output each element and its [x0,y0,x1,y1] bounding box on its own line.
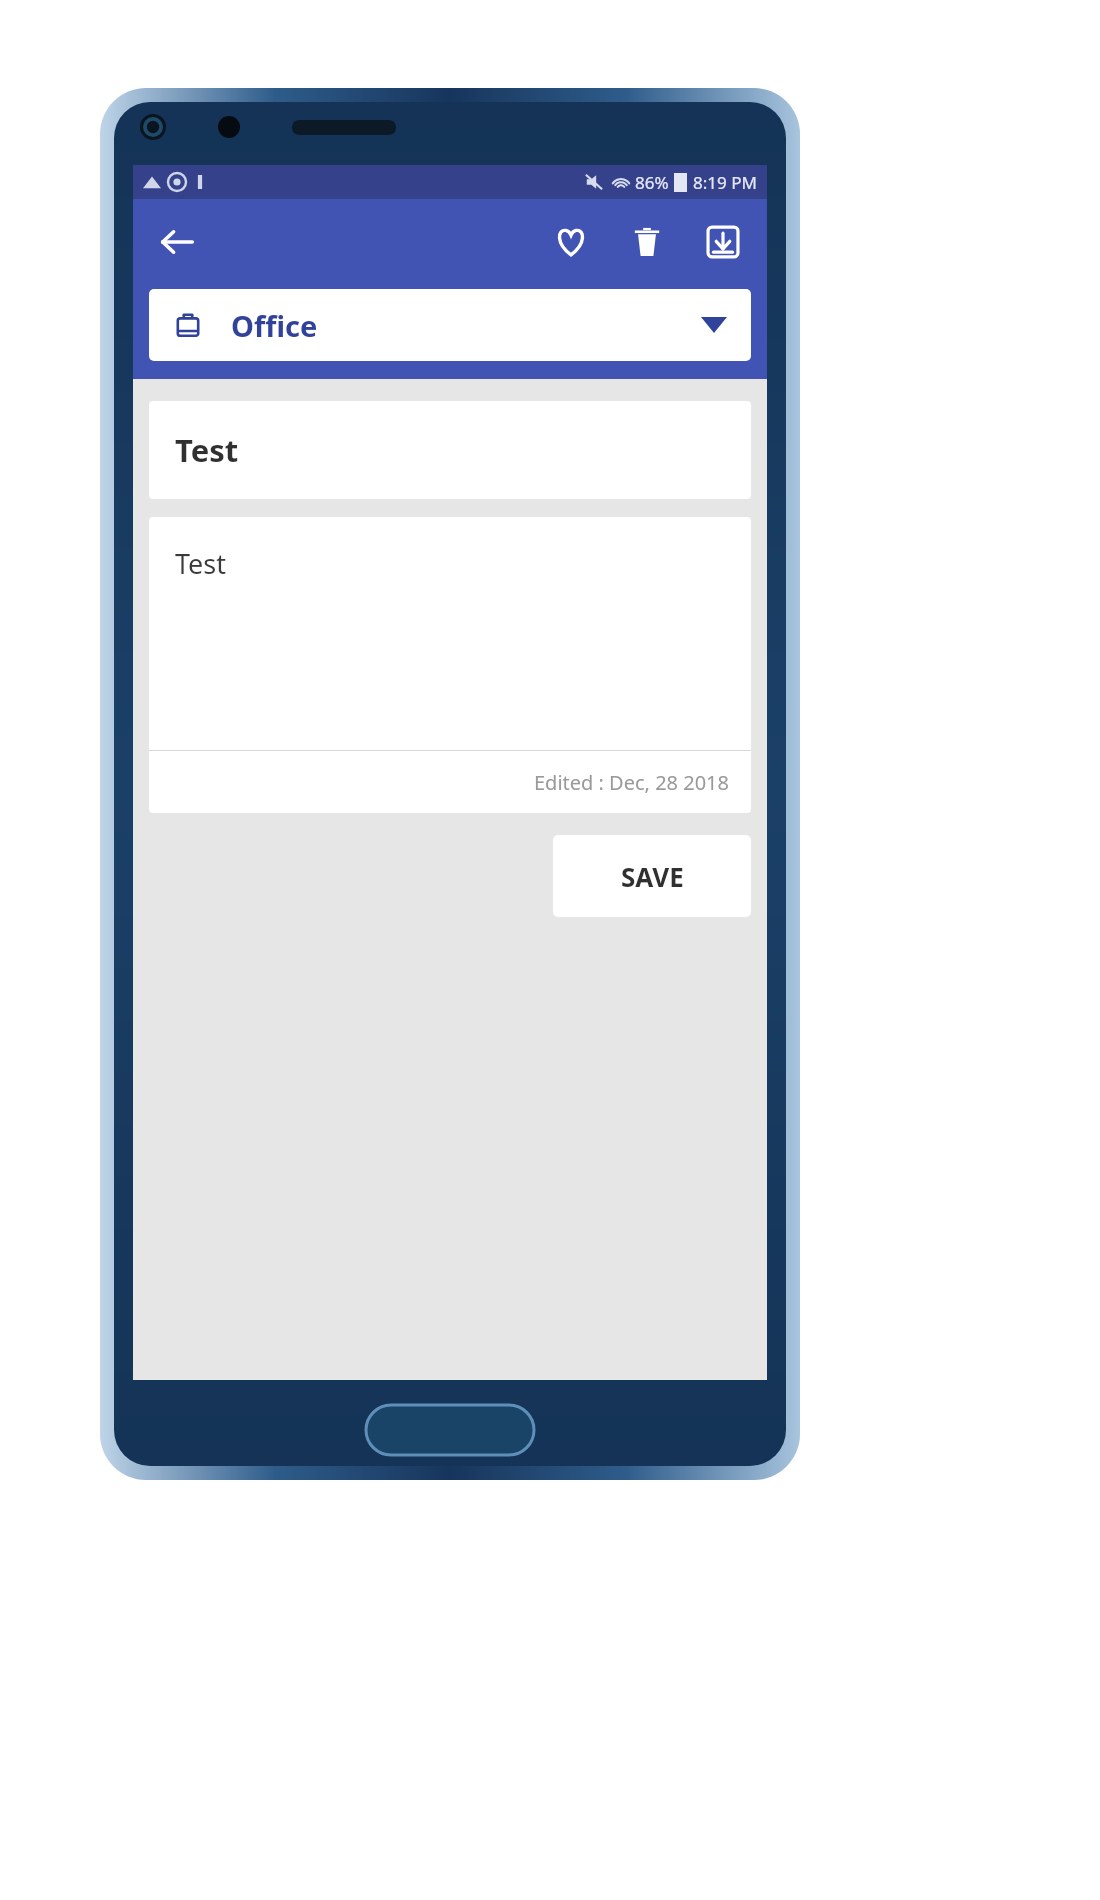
staticText: 86% [635,171,669,194]
staticText: Edited : Dec, 28 2018 [533,769,729,796]
staticText: 8:19 PM [693,171,757,194]
button[interactable]: Test [149,401,751,499]
button[interactable]: Delete [619,214,675,270]
button[interactable]: Save [695,214,751,270]
button[interactable]: Test [149,517,751,813]
button[interactable]: SAVE [553,835,751,917]
staticText: Office [231,306,318,345]
staticText: Test [175,429,239,471]
button[interactable]: Favorite [543,214,599,270]
button[interactable]: Back [149,214,205,270]
staticText: SAVE [621,859,684,894]
button[interactable]: Office [149,289,751,361]
staticText: Test [175,545,227,582]
